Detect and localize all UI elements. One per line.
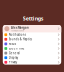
button[interactable]: Privacy [3,60,61,65]
staticText: Alex Morgan [11,26,29,29]
staticText: Settings [23,15,44,22]
button[interactable]: Alex Morgan [3,25,61,32]
button[interactable]: General [3,51,61,55]
staticText: Privacy [9,60,17,64]
staticText: Notifications [9,33,26,36]
button[interactable]: Notifications [3,32,61,37]
staticText: Screen Time [9,47,25,50]
staticText: General [9,51,20,55]
button[interactable]: Sounds & Haptics [3,37,61,42]
staticText: Display [9,56,18,59]
button[interactable]: Focus [3,42,61,46]
staticText: Apple ID, iCloud, Media [11,30,24,32]
button[interactable]: Screen Time [3,46,61,51]
staticText: Focus [9,42,16,46]
button[interactable]: Display [3,55,61,60]
staticText: Sounds & Haptics [9,37,32,41]
